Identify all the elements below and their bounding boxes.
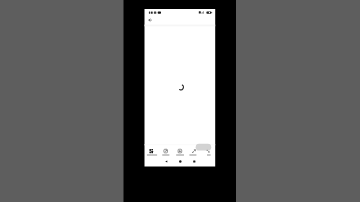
- button[interactable]: Forecast: [159, 145, 173, 157]
- button[interactable]: More: [201, 145, 215, 157]
- button[interactable]: Navigate up: [145, 16, 155, 26]
- button[interactable]: Explore: [173, 145, 187, 157]
- button[interactable]: Recent apps: [189, 157, 200, 167]
- button[interactable]: Settings: [187, 145, 201, 157]
- button[interactable]: Home: [175, 157, 186, 167]
- button[interactable]: Dashboard: [145, 145, 159, 157]
- button[interactable]: Back: [161, 157, 172, 167]
